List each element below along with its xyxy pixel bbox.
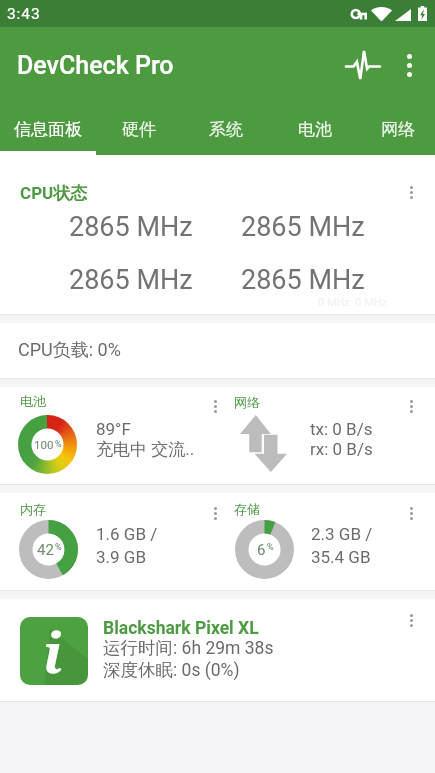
button[interactable]: 信息面板	[0, 103, 96, 155]
button[interactable]: 硬件	[96, 103, 182, 155]
staticText: 1.6 GB /	[96, 524, 158, 544]
staticText: CPU状态	[20, 183, 88, 204]
staticText: 2865 MHz	[69, 264, 193, 296]
staticText: 3.9 GB	[96, 547, 146, 567]
staticText: rx: 0 B/s	[310, 439, 373, 459]
staticText: 充电中 交流..	[96, 439, 195, 460]
staticText: 深度休眠: 0s (0%)	[103, 659, 240, 681]
staticText: 6	[257, 541, 266, 559]
staticText: 2.3 GB /	[311, 524, 373, 544]
staticText: 网络	[234, 394, 260, 410]
staticText: tx: 0 B/s	[310, 419, 373, 439]
button[interactable]: 电池	[269, 103, 360, 155]
staticText: 网络	[381, 119, 415, 140]
staticText: 电池	[298, 119, 332, 140]
staticText: 运行时间: 6h 29m 38s	[103, 637, 274, 659]
staticText: 2865 MHz	[241, 264, 365, 296]
staticText: 100	[34, 438, 54, 451]
staticText: DevCheck Pro	[17, 51, 174, 80]
staticText: %	[267, 542, 274, 553]
staticText: 内存	[20, 501, 46, 517]
staticText: 35.4 GB	[311, 547, 371, 567]
staticText: %	[55, 542, 62, 553]
button[interactable]: 系统	[182, 103, 269, 155]
staticText: %	[55, 439, 62, 450]
button[interactable]: Options	[398, 500, 424, 526]
button[interactable]: Options	[202, 393, 228, 419]
button[interactable]: Options	[398, 179, 424, 205]
staticText: 3:43	[7, 5, 41, 23]
button[interactable]: Options	[398, 393, 424, 419]
button[interactable]: 网络	[360, 103, 435, 155]
staticText: CPU负载: 0%	[18, 339, 121, 362]
staticText: 信息面板	[14, 119, 82, 140]
staticText: Blackshark Pixel XL	[103, 618, 259, 639]
staticText: 2865 MHz	[241, 211, 365, 243]
button[interactable]: Options	[202, 500, 228, 526]
staticText: i	[43, 617, 63, 683]
button[interactable]: Options	[398, 607, 424, 633]
staticText: 89°F	[96, 419, 131, 439]
staticText: 硬件	[122, 119, 156, 140]
button[interactable]: Live monitor	[339, 41, 387, 89]
staticText: 系统	[209, 119, 243, 140]
staticText: 电池	[20, 393, 46, 409]
staticText: 2865 MHz	[69, 211, 193, 243]
button[interactable]: Device info	[20, 617, 88, 685]
staticText: 42	[37, 541, 54, 559]
button[interactable]: More options	[387, 43, 431, 87]
staticText: 存储	[234, 501, 260, 517]
staticText: 0 MHz 0 MHz	[318, 296, 388, 309]
